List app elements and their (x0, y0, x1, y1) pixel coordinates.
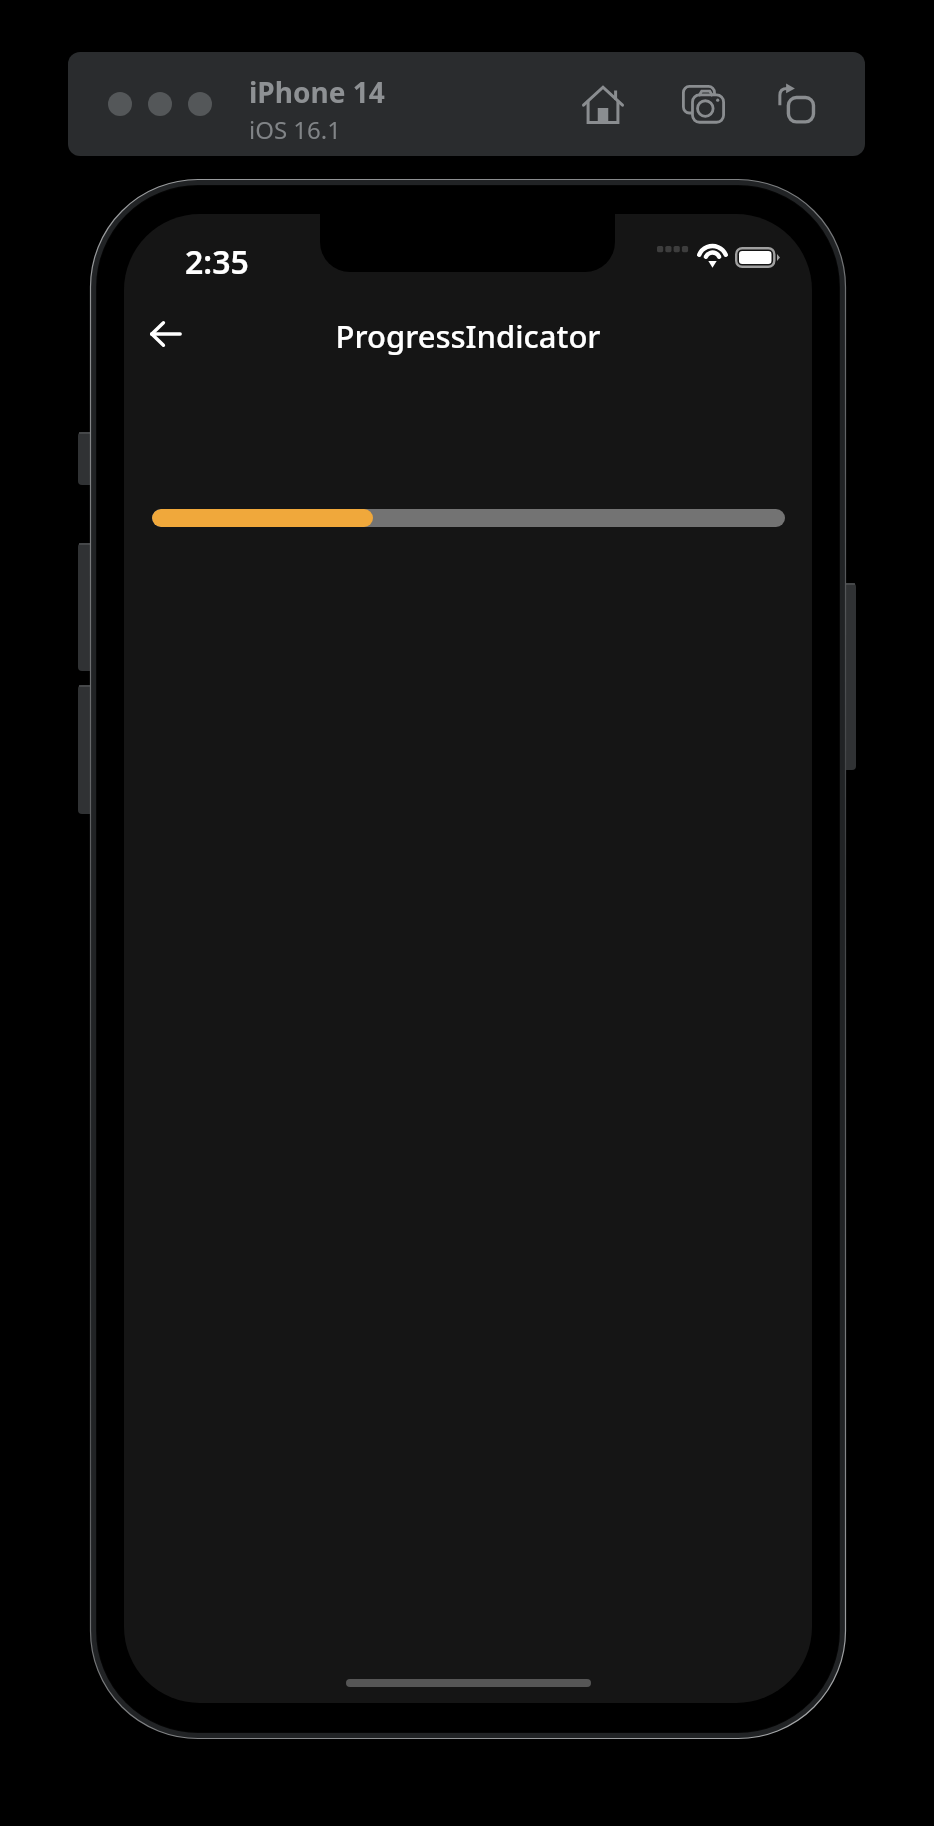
staticText: iPhone 14 (249, 73, 385, 111)
button[interactable]: Screenshot (665, 66, 741, 142)
button[interactable]: Rotate (758, 66, 834, 142)
button[interactable]: Back (132, 300, 200, 368)
staticText: iOS 16.1 (249, 113, 341, 146)
button[interactable] (152, 509, 785, 527)
button[interactable]: Home (565, 66, 641, 142)
button[interactable]: Close (108, 92, 132, 116)
button[interactable]: Zoom (188, 92, 212, 116)
staticText: ProgressIndicator (124, 315, 812, 357)
staticText: 2:35 (185, 240, 249, 284)
button[interactable]: Minimize (148, 92, 172, 116)
